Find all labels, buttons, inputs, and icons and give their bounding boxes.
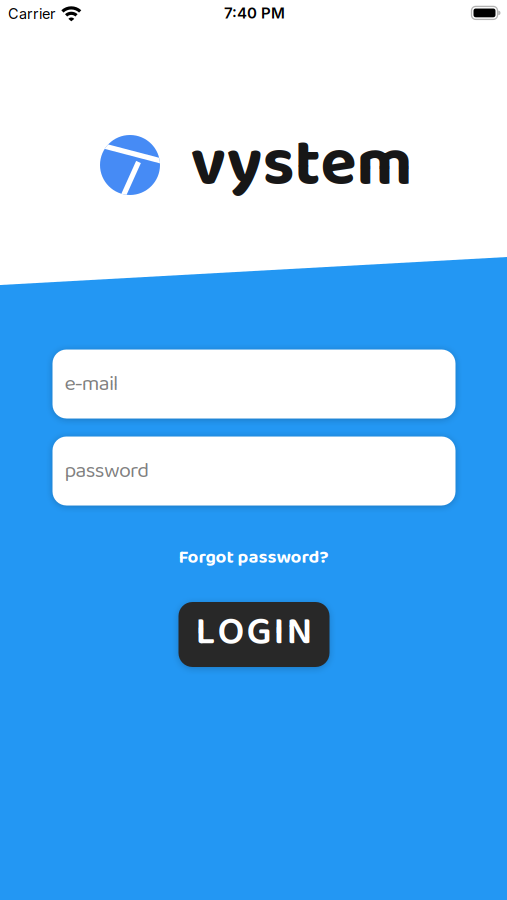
- button[interactable]: password: [52, 436, 455, 505]
- staticText: Forgot password?: [178, 542, 328, 572]
- staticText: O: [217, 601, 244, 663]
- staticText: e-mail: [64, 367, 118, 401]
- staticText: L: [195, 601, 215, 663]
- button[interactable]: e-mail: [52, 349, 455, 418]
- staticText: G: [246, 601, 271, 663]
- button[interactable]: Forgot password?: [178, 542, 328, 572]
- staticText: 7:40 PM: [224, 4, 285, 22]
- staticText: Carrier: [8, 5, 55, 22]
- staticText: I: [273, 601, 284, 663]
- staticText: vystem: [190, 111, 412, 218]
- button[interactable]: LOGIN: [178, 602, 329, 667]
- staticText: N: [286, 601, 312, 663]
- staticText: password: [64, 454, 149, 488]
